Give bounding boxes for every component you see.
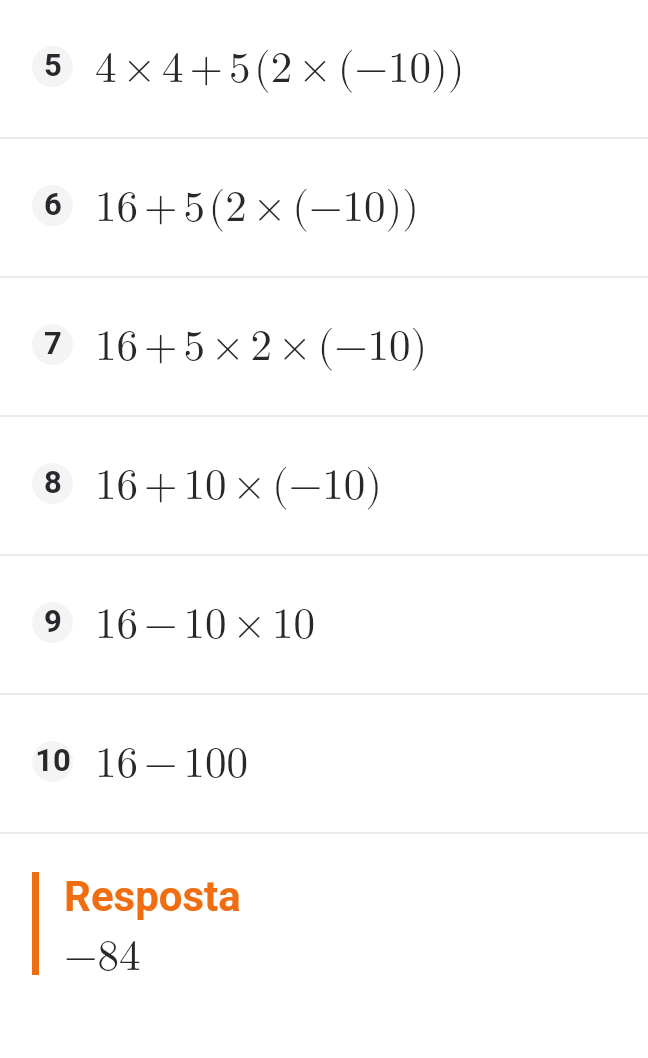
staticText: 16 − 100	[95, 742, 248, 785]
button[interactable]: 10	[0, 695, 648, 832]
staticText: 8	[44, 464, 62, 500]
staticText: 10	[35, 742, 71, 778]
staticText: 9	[44, 603, 62, 639]
button[interactable]: 7	[0, 278, 648, 415]
staticText: 4 × 4 + 5 (2 × (−10))	[95, 47, 465, 90]
staticText: Resposta	[64, 872, 241, 921]
button[interactable]: 5	[0, 0, 648, 137]
staticText: 16 + 5 × 2 × (−10)	[95, 325, 428, 368]
button[interactable]: 6	[0, 139, 648, 276]
button[interactable]: 8	[0, 417, 648, 554]
staticText: 5	[44, 47, 62, 83]
staticText: 16 + 5 (2 × (−10))	[95, 186, 419, 229]
staticText: 6	[44, 186, 62, 222]
staticText: −84	[64, 935, 141, 978]
staticText: 16 − 10 × 10	[95, 603, 315, 646]
button[interactable]: 9	[0, 556, 648, 693]
staticText: 16 + 10 × (−10)	[95, 464, 382, 507]
staticText: 7	[44, 325, 62, 361]
